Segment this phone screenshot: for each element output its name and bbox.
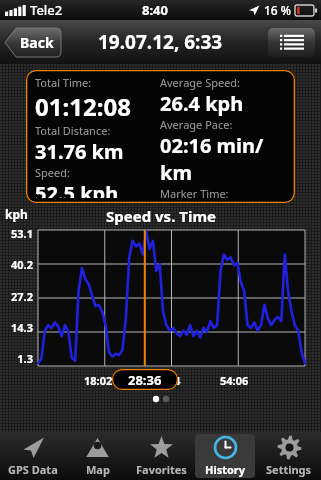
staticText: 1.3 bbox=[0, 351, 33, 366]
staticText: 53.1 bbox=[0, 226, 33, 241]
staticText: 01:12:08 bbox=[35, 90, 131, 123]
staticText: Favorites bbox=[136, 462, 187, 477]
staticText: Average Speed: bbox=[160, 75, 241, 90]
button[interactable]: Back bbox=[5, 28, 61, 57]
staticText: Marker Time: bbox=[160, 186, 229, 198]
staticText: 8:40 bbox=[142, 1, 168, 19]
staticText: Back bbox=[20, 33, 54, 52]
staticText: 14.3 bbox=[0, 320, 33, 335]
staticText: 02:16 min/km bbox=[160, 132, 286, 186]
button[interactable]: 28:36 bbox=[112, 369, 178, 390]
staticText: 27.2 bbox=[0, 289, 33, 304]
staticText: Map bbox=[86, 462, 110, 477]
staticText: GPS Data bbox=[8, 462, 58, 477]
button[interactable]: GPS Data bbox=[2, 434, 63, 478]
staticText: Settings bbox=[266, 462, 312, 477]
button[interactable]: Total Time: bbox=[26, 70, 295, 203]
staticText: 36:04 bbox=[152, 373, 181, 388]
staticText: kph bbox=[5, 206, 28, 222]
staticText: 19.07.12, 6:33 bbox=[98, 29, 223, 55]
staticText: Speed vs. Time bbox=[106, 206, 216, 226]
staticText: Total Distance: bbox=[35, 123, 111, 138]
staticText: 31.76 km bbox=[35, 138, 124, 165]
button[interactable]: History bbox=[195, 434, 255, 478]
staticText: 18:02 bbox=[84, 373, 113, 388]
button[interactable]: List bbox=[268, 28, 315, 57]
button[interactable]: Favorites bbox=[131, 434, 191, 478]
staticText: History bbox=[205, 462, 246, 477]
staticText: Speed: bbox=[35, 165, 70, 180]
staticText: 16 % bbox=[264, 2, 292, 18]
button[interactable]: Settings bbox=[259, 434, 319, 478]
staticText: 40.2 bbox=[0, 257, 33, 272]
staticText: 52.5 kph bbox=[35, 180, 119, 198]
staticText: Total Time: bbox=[35, 75, 92, 90]
staticText: 28:36 bbox=[128, 371, 162, 389]
button[interactable]: Map bbox=[67, 434, 127, 478]
staticText: Tele2 bbox=[30, 1, 63, 19]
staticText: 26.4 kph bbox=[160, 90, 244, 117]
staticText: Average Pace: bbox=[160, 117, 233, 132]
staticText: 54:06 bbox=[220, 373, 249, 388]
